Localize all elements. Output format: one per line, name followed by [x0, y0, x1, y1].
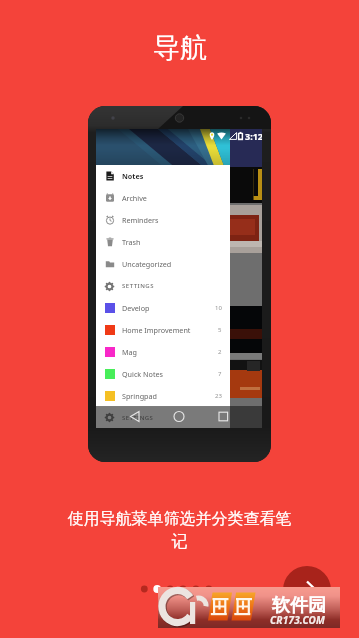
button[interactable]: Notes [96, 165, 230, 187]
staticText: 使用导航菜单筛选并分类查看笔记 [64, 509, 295, 552]
button[interactable]: Home Improvement [96, 319, 230, 341]
staticText: 7 [218, 370, 222, 378]
staticText: Uncategorized [122, 259, 172, 269]
staticText: Quick Notes [122, 369, 163, 379]
staticText: Trash [122, 237, 141, 247]
staticText: Springpad [122, 391, 157, 401]
button[interactable]: Reminders [96, 209, 230, 231]
staticText: SETTINGS [122, 282, 154, 290]
button[interactable]: SETTINGS [96, 407, 230, 428]
staticText: 23 [215, 392, 222, 400]
staticText: 3:12 [245, 130, 262, 142]
button[interactable]: Mag [96, 341, 230, 363]
button[interactable]: Archive [96, 187, 230, 209]
staticText: 2 [218, 348, 222, 356]
button[interactable]: Springpad [96, 385, 230, 407]
staticText: CR173.COM [270, 613, 326, 627]
staticText: Develop [122, 303, 150, 313]
staticText: SETTINGS [122, 414, 154, 422]
button[interactable]: Quick Notes [96, 363, 230, 385]
staticText: 5 [218, 326, 222, 334]
button[interactable]: Uncategorized [96, 253, 230, 275]
button[interactable]: Trash [96, 231, 230, 253]
button[interactable]: Develop [96, 297, 230, 319]
staticText: Notes [122, 171, 144, 181]
staticText: Archive [122, 193, 147, 203]
staticText: 软件园 [272, 594, 326, 617]
staticText: 导航 [153, 31, 207, 65]
staticText: Home Improvement [122, 325, 191, 335]
staticText: Reminders [122, 215, 159, 225]
button[interactable]: SETTINGS [96, 275, 230, 297]
button[interactable]: Next [283, 566, 331, 614]
staticText: 10 [215, 304, 222, 312]
staticText: Mag [122, 347, 137, 357]
